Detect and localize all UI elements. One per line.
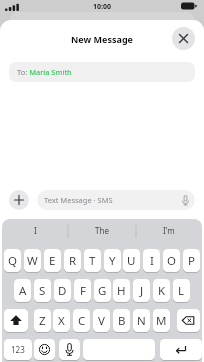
button[interactable]: S [34, 279, 51, 303]
button[interactable]: D [54, 279, 71, 303]
button[interactable]: P [183, 249, 200, 273]
button[interactable]: The [68, 222, 136, 239]
button[interactable] [160, 339, 202, 361]
staticText: I [34, 225, 37, 236]
button[interactable]: T [84, 249, 101, 273]
staticText: 123 [11, 344, 25, 355]
staticText: I [150, 253, 154, 269]
button[interactable]: V [93, 309, 110, 333]
button[interactable]: M [153, 309, 170, 333]
button[interactable] [59, 339, 80, 361]
staticText: E [49, 253, 56, 269]
staticText: U [127, 253, 136, 269]
button[interactable] [172, 27, 195, 50]
staticText: T [89, 253, 96, 269]
button[interactable] [83, 339, 155, 361]
button[interactable] [9, 190, 29, 210]
staticText: I'm [163, 225, 175, 236]
staticText: B [118, 313, 126, 329]
staticText: Text Message · SMS [44, 195, 113, 205]
staticText: S [39, 283, 46, 299]
button[interactable]: E [44, 249, 61, 273]
button[interactable]: X [53, 309, 70, 333]
staticText: P [188, 253, 195, 269]
staticText: L [178, 283, 185, 299]
staticText: R [69, 253, 77, 269]
button[interactable] [177, 309, 200, 333]
button[interactable]: G [94, 279, 111, 303]
staticText: C [78, 313, 86, 329]
staticText: K [158, 283, 166, 299]
button[interactable]: K [153, 279, 170, 303]
button[interactable]: Z [34, 309, 51, 333]
staticText: Z [39, 313, 46, 329]
staticText: Y [109, 253, 116, 269]
staticText: F [80, 283, 86, 299]
staticText: G [98, 283, 107, 299]
staticText: W [27, 253, 38, 269]
button[interactable] [34, 339, 55, 361]
staticText: D [58, 283, 67, 299]
button[interactable]: A [14, 279, 31, 303]
button[interactable]: U [123, 249, 140, 273]
button[interactable] [4, 309, 28, 333]
button[interactable]: Text Message · SMS [37, 190, 195, 210]
staticText: The [95, 225, 109, 236]
button[interactable]: H [113, 279, 130, 303]
button[interactable]: W [24, 249, 41, 273]
button[interactable]: J [133, 279, 150, 303]
button[interactable]: B [113, 309, 130, 333]
button[interactable]: 123 [4, 339, 32, 361]
button[interactable]: Y [104, 249, 121, 273]
staticText: H [117, 283, 126, 299]
button[interactable]: I [143, 249, 160, 273]
button[interactable]: Q [4, 249, 21, 273]
staticText: Q [8, 253, 17, 269]
staticText: To: Maria Smith [17, 67, 72, 77]
button[interactable]: N [133, 309, 150, 333]
button[interactable]: F [74, 279, 91, 303]
staticText: N [137, 313, 146, 329]
staticText: X [58, 313, 65, 329]
staticText: New Message [0, 33, 204, 45]
staticText: O [167, 253, 176, 269]
button[interactable]: C [73, 309, 90, 333]
button[interactable]: I [2, 222, 68, 239]
staticText: M [156, 313, 167, 329]
button[interactable]: I'm [136, 222, 202, 239]
button[interactable]: O [163, 249, 180, 273]
button[interactable]: L [173, 279, 190, 303]
staticText: V [98, 313, 105, 329]
button[interactable]: R [64, 249, 81, 273]
staticText: J [140, 283, 144, 299]
staticText: 10:00 [0, 2, 204, 12]
button[interactable]: To: Maria Smith [9, 62, 195, 82]
staticText: A [19, 283, 27, 299]
